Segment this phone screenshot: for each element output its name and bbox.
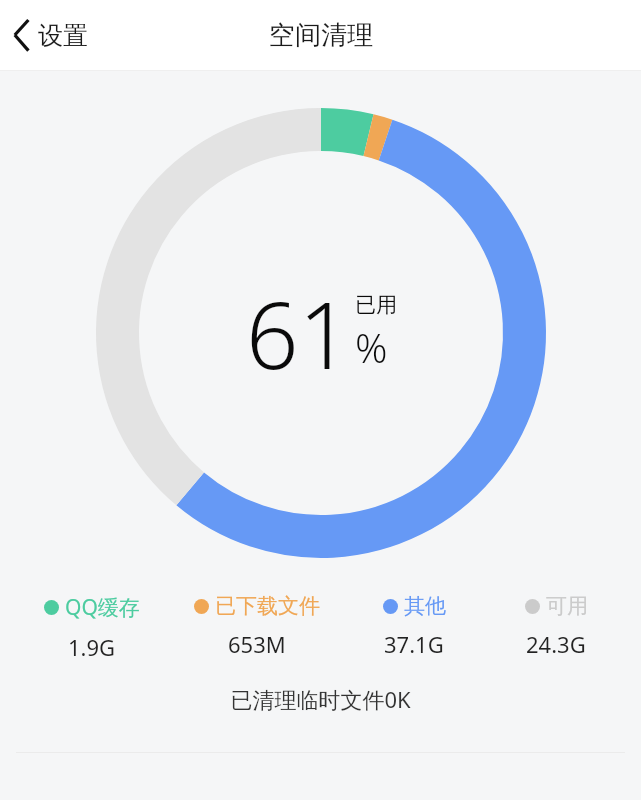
- staticText: 可用: [546, 593, 588, 619]
- staticText: 24.3G: [526, 629, 586, 659]
- button[interactable]: 设置: [10, 12, 90, 58]
- staticText: 1.9G: [68, 632, 116, 662]
- staticText: %: [355, 320, 388, 374]
- staticText: 61: [246, 271, 352, 396]
- button[interactable]: 已下载文件: [170, 593, 343, 659]
- staticText: 其他: [404, 593, 446, 619]
- staticText: QQ缓存: [65, 593, 140, 622]
- button[interactable]: 其他: [343, 593, 485, 659]
- staticText: 空间清理: [269, 19, 373, 52]
- button[interactable]: QQ缓存: [14, 593, 170, 662]
- button[interactable]: 可用: [485, 593, 627, 659]
- staticText: 653M: [228, 629, 286, 659]
- staticText: 已清理临时文件0K: [0, 684, 641, 714]
- staticText: 已下载文件: [215, 593, 320, 619]
- staticText: 设置: [38, 20, 88, 51]
- staticText: 37.1G: [384, 629, 444, 659]
- staticText: 已用: [355, 292, 397, 318]
